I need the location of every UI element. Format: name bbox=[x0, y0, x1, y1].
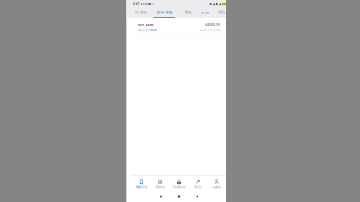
staticText: Fin Nifty bbox=[135, 11, 146, 14]
staticText: Sensex bbox=[201, 11, 209, 14]
button[interactable]: Crypto bbox=[207, 177, 226, 190]
staticText: Bank Nifty bbox=[157, 11, 172, 14]
button[interactable]: Back bbox=[188, 191, 206, 202]
button[interactable]: Bank Nifty bbox=[153, 8, 175, 18]
button[interactable]: Nifty bbox=[183, 8, 194, 18]
staticText: NIFTY BANK bbox=[138, 23, 154, 27]
staticText: Portfolio bbox=[172, 185, 185, 189]
staticText: INDICES bbox=[138, 28, 148, 32]
button[interactable]: Portfolio bbox=[170, 177, 188, 190]
staticText: INDEX bbox=[149, 28, 157, 32]
staticText: Nifty bbox=[185, 11, 191, 14]
staticText: -4.30 (-0.01%) bbox=[199, 28, 220, 32]
button[interactable]: Nifty bbox=[216, 8, 227, 18]
staticText: Crypto bbox=[212, 185, 221, 189]
staticText: Nifty bbox=[218, 11, 224, 14]
button[interactable]: Orders bbox=[151, 177, 170, 190]
button[interactable]: Sensex bbox=[198, 8, 211, 18]
button[interactable]: Fin Nifty bbox=[133, 8, 149, 18]
button[interactable]: Recents bbox=[152, 191, 170, 202]
button[interactable]: Home bbox=[170, 191, 188, 202]
staticText: Orders bbox=[156, 185, 165, 189]
staticText: 44000.95 bbox=[205, 23, 220, 27]
staticText: Tools bbox=[194, 185, 201, 189]
button[interactable]: Tools bbox=[188, 177, 207, 190]
button[interactable]: Watchlist bbox=[132, 177, 151, 190]
staticText: 4:41 bbox=[133, 2, 140, 6]
staticText: Watchlist bbox=[136, 185, 147, 189]
